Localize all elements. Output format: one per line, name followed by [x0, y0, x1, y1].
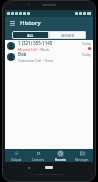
button[interactable]: 1 (321) 555-1145	[5, 40, 93, 51]
staticText: Contacts	[32, 158, 44, 162]
button[interactable]: ALL	[12, 31, 49, 39]
staticText: Today	[82, 53, 91, 57]
button[interactable]: Recents	[49, 149, 71, 162]
staticText: Recents	[55, 158, 66, 162]
staticText: Messages	[75, 158, 89, 162]
button[interactable]: Bob	[5, 51, 93, 62]
button[interactable]: Open navigation menu	[8, 19, 17, 28]
staticText: MISSED	[61, 33, 75, 38]
staticText: Bob	[18, 51, 27, 57]
staticText: Outgoing Call	[18, 58, 42, 62]
staticText: ALL	[27, 33, 34, 38]
staticText: Dialpad	[11, 158, 22, 162]
button[interactable]: Dialpad	[5, 149, 27, 162]
staticText: History	[20, 19, 41, 27]
button[interactable]: Messages	[71, 149, 93, 162]
button[interactable]: MISSED	[49, 31, 86, 39]
staticText: 1 (321) 555-1145	[18, 40, 53, 46]
staticText: • Work	[37, 47, 50, 51]
staticText: Missed Call	[18, 47, 37, 51]
staticText: Today	[82, 42, 91, 46]
staticText: • Item	[42, 58, 54, 62]
button[interactable]: Contacts	[27, 149, 49, 162]
